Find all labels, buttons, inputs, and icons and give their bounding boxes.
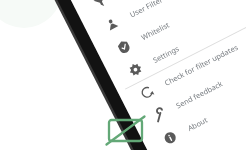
button[interactable]: Screenshot disabled page [0,0,246,150]
